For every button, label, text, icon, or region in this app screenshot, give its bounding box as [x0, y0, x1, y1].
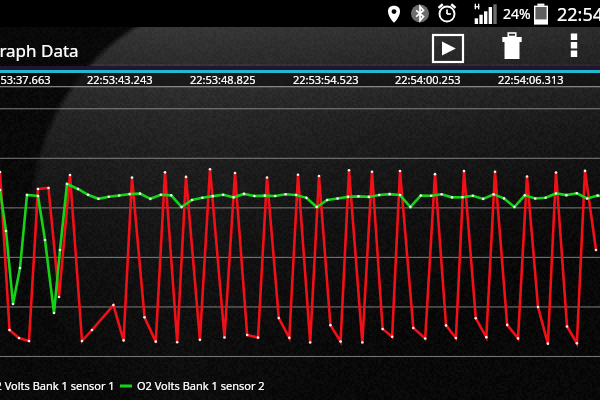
staticText: 22:54:06.313: [498, 72, 564, 87]
button[interactable]: More options: [565, 30, 583, 60]
staticText: 22:54:00.253: [395, 72, 461, 87]
button[interactable]: Delete: [501, 31, 523, 61]
staticText: 22:53:37.663: [0, 72, 51, 87]
staticText: 22:54: [557, 2, 600, 27]
staticText: 24%: [503, 4, 531, 23]
button[interactable]: Play: [433, 35, 463, 62]
staticText: 22:53:54.523: [293, 72, 359, 87]
staticText: 22:53:48.825: [190, 72, 256, 87]
staticText: 22:53:43.243: [87, 72, 153, 87]
staticText: Graph Data: [0, 39, 79, 62]
staticText: O2 Volts Bank 1 sensor 2: [137, 378, 265, 393]
staticText: O2 Volts Bank 1 sensor 1: [0, 378, 115, 393]
